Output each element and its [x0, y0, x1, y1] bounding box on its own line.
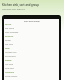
staticText: File name	[5, 27, 15, 30]
staticText: Show hidden	[5, 75, 18, 78]
staticText: List view	[5, 63, 13, 66]
button[interactable]: List view	[5, 63, 58, 66]
staticText: the way you want it	[2, 7, 25, 10]
staticText: Group by	[5, 35, 14, 38]
staticText: Folder	[5, 39, 11, 42]
staticText: Documents	[5, 55, 16, 58]
button[interactable]: Folder	[5, 39, 58, 42]
staticText: Sort by	[5, 23, 12, 26]
button[interactable]: Date modified	[5, 31, 58, 34]
staticText: Sort and group	[24, 20, 40, 23]
staticText: Filter	[5, 47, 10, 50]
staticText: File type	[5, 43, 13, 46]
button[interactable]: Images only	[5, 51, 58, 54]
button[interactable]: Grid view	[5, 67, 58, 70]
button[interactable]: File type	[5, 43, 58, 46]
staticText: Kitchen sink, sort and group	[2, 3, 39, 7]
button[interactable]: Documents	[5, 55, 58, 58]
staticText: Display	[5, 59, 12, 62]
button[interactable]: File name	[5, 27, 58, 30]
staticText: Grid view	[5, 67, 14, 70]
button[interactable]: Show hidden	[5, 75, 58, 78]
button[interactable]: Sort and group	[4, 19, 59, 23]
staticText: Date modified	[5, 31, 19, 34]
staticText: Advanced	[5, 71, 14, 74]
staticText: Images only	[5, 51, 17, 54]
